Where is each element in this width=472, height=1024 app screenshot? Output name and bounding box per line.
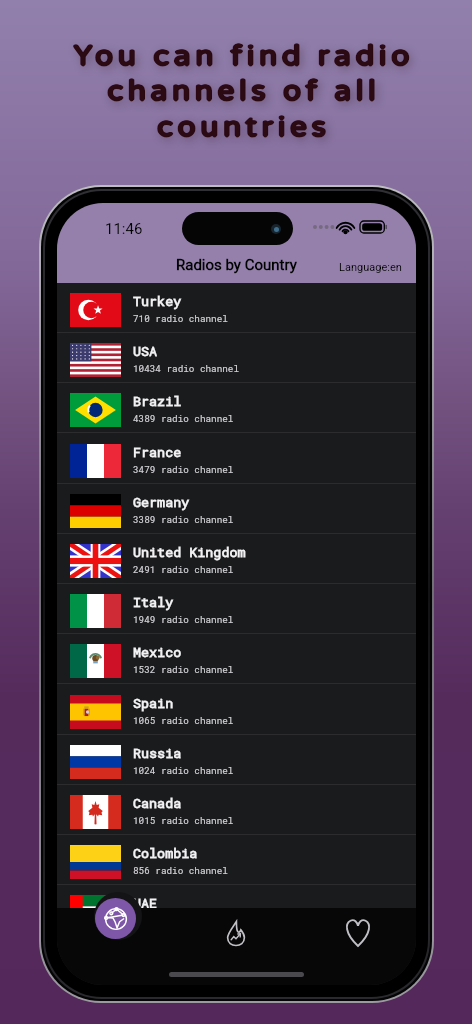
staticText: Language:en bbox=[339, 261, 402, 274]
button[interactable]: Russia bbox=[57, 735, 416, 785]
staticText: You can find radio channels of all count… bbox=[9, 38, 472, 145]
staticText: 1015 radio channel bbox=[133, 814, 234, 826]
staticText: France bbox=[133, 443, 182, 461]
button[interactable]: Countries bbox=[95, 898, 136, 939]
button[interactable]: Turkey bbox=[57, 283, 416, 333]
staticText: You can find radio channels of all count… bbox=[8, 38, 472, 145]
staticText: 1065 radio channel bbox=[133, 714, 234, 726]
staticText: Colombia bbox=[133, 844, 198, 862]
staticText: You can find radio channels of all count… bbox=[8, 39, 472, 146]
button[interactable]: Italy bbox=[57, 584, 416, 634]
staticText: 710 radio channel bbox=[133, 312, 228, 324]
staticText: Germany bbox=[133, 493, 190, 511]
button[interactable]: Countries bbox=[90, 908, 142, 960]
staticText: Radios by Country bbox=[176, 256, 297, 274]
staticText: Russia bbox=[133, 744, 182, 762]
staticText: Turkey bbox=[133, 292, 182, 310]
staticText: 10434 radio channel bbox=[133, 362, 240, 374]
button[interactable]: Brazil bbox=[57, 383, 416, 433]
staticText: Spain bbox=[133, 694, 174, 712]
button[interactable]: Spain bbox=[57, 685, 416, 735]
button[interactable]: Trending bbox=[210, 908, 262, 960]
staticText: 11:46 bbox=[105, 220, 143, 238]
staticText: 856 radio channel bbox=[133, 864, 228, 876]
button[interactable]: Language:en bbox=[329, 255, 412, 280]
staticText: 1532 radio channel bbox=[133, 663, 234, 675]
staticText: You can find radio channels of all count… bbox=[8, 38, 472, 145]
staticText: UAE bbox=[133, 894, 158, 908]
staticText: Italy bbox=[133, 593, 174, 611]
staticText: Mexico bbox=[133, 643, 182, 661]
button[interactable]: Favorites bbox=[332, 908, 384, 960]
staticText: You can find radio channels of all count… bbox=[8, 38, 472, 145]
staticText: United Kingdom bbox=[133, 543, 246, 561]
staticText: USA bbox=[133, 342, 158, 360]
button[interactable]: UAE bbox=[57, 885, 416, 908]
button[interactable]: France bbox=[57, 434, 416, 484]
staticText: Brazil bbox=[133, 392, 182, 410]
staticText: 4389 radio channel bbox=[133, 412, 234, 424]
staticText: 1949 radio channel bbox=[133, 613, 234, 625]
staticText: 1024 radio channel bbox=[133, 764, 234, 776]
button[interactable]: USA bbox=[57, 333, 416, 383]
button[interactable]: Canada bbox=[57, 785, 416, 835]
button[interactable]: United Kingdom bbox=[57, 534, 416, 584]
button[interactable]: Colombia bbox=[57, 835, 416, 885]
button[interactable]: Germany bbox=[57, 484, 416, 534]
staticText: Canada bbox=[133, 794, 182, 812]
staticText: 3479 radio channel bbox=[133, 463, 234, 475]
staticText: You can find radio channels of all count… bbox=[7, 38, 472, 145]
button[interactable]: Mexico bbox=[57, 634, 416, 684]
staticText: 2491 radio channel bbox=[133, 563, 234, 575]
staticText: 3389 radio channel bbox=[133, 513, 234, 525]
